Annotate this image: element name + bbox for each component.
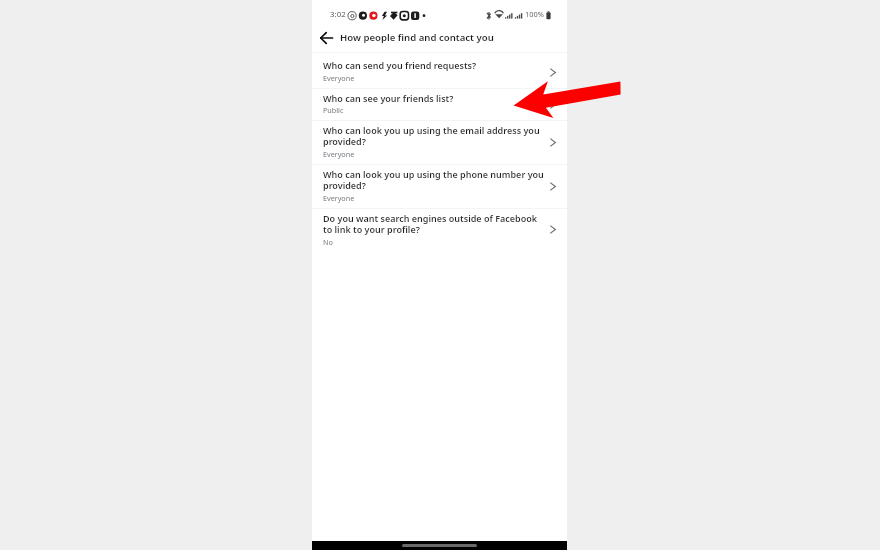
staticText: Who can see your friends list? (323, 92, 547, 104)
staticText: Everyone (323, 193, 355, 203)
button[interactable]: Who can send you friend requests? (312, 53, 567, 89)
staticText: Everyone (323, 73, 355, 83)
staticText: 3:02 (330, 9, 346, 20)
staticText: How people find and contact you (340, 31, 494, 44)
staticText: Public (323, 105, 344, 115)
button[interactable]: Do you want search engines outside of Fa… (312, 209, 567, 250)
button[interactable]: Who can see your friends list? (312, 89, 567, 121)
staticText: Who can look you up using the phone numb… (323, 168, 547, 192)
staticText: Who can send you friend requests? (323, 59, 547, 71)
staticText: Do you want search engines outside of Fa… (323, 212, 547, 236)
button[interactable]: Back (312, 26, 340, 52)
staticText: 100% (525, 9, 544, 19)
button[interactable]: Who can look you up using the email addr… (312, 121, 567, 165)
staticText: No (323, 237, 333, 247)
staticText: Who can look you up using the email addr… (323, 124, 547, 148)
staticText: Everyone (323, 149, 355, 159)
button[interactable]: Who can look you up using the phone numb… (312, 165, 567, 209)
